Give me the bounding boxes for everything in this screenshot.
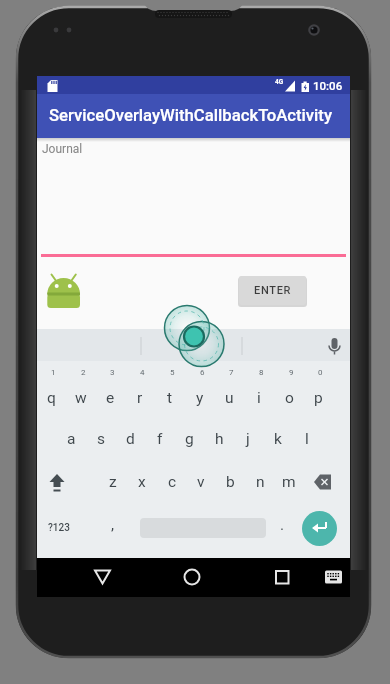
staticText: y (196, 389, 204, 407)
staticText: ENTER (254, 284, 292, 297)
staticText: o (285, 389, 294, 407)
button[interactable]: k (264, 426, 292, 452)
staticText: 9 (289, 368, 294, 377)
button[interactable]: r (126, 385, 154, 411)
staticText: b (226, 473, 235, 491)
button[interactable] (302, 511, 337, 546)
button[interactable]: i (245, 385, 273, 411)
staticText: 2 (81, 368, 86, 377)
button[interactable]: ?123 (41, 515, 77, 541)
button[interactable]: q (37, 385, 65, 411)
staticText: 4G (275, 78, 284, 86)
staticText: . (280, 516, 285, 534)
staticText: i (257, 389, 261, 407)
button[interactable]: j (234, 426, 262, 452)
button[interactable]: a (57, 426, 85, 452)
staticText: j (246, 430, 250, 448)
staticText: ServiceOverlayWithCallbackToActivity (49, 106, 333, 126)
staticText: u (225, 389, 234, 407)
staticText: 8 (259, 368, 264, 377)
staticText: c (168, 473, 177, 491)
staticText: 1 (51, 368, 56, 377)
staticText: h (215, 430, 224, 448)
staticText: m (282, 473, 296, 491)
staticText: 10:06 (313, 79, 343, 92)
button[interactable]: ENTER (239, 276, 306, 305)
staticText: z (109, 473, 117, 491)
staticText: n (256, 473, 265, 491)
staticText: f (157, 430, 163, 448)
staticText: ?123 (48, 522, 70, 534)
staticText: 7 (229, 368, 234, 377)
staticText: e (106, 389, 115, 407)
button[interactable]: x (128, 469, 156, 495)
button[interactable]: . (272, 512, 292, 538)
staticText: t (167, 389, 173, 407)
button[interactable]: o (275, 385, 303, 411)
button[interactable]: t (156, 385, 184, 411)
button[interactable]: h (205, 426, 233, 452)
staticText: 6 (200, 368, 205, 377)
button[interactable]: u (215, 385, 243, 411)
staticText: s (97, 430, 105, 448)
button[interactable]: z (99, 469, 127, 495)
button[interactable]: g (175, 426, 203, 452)
staticText: 5 (170, 368, 175, 377)
button[interactable]: d (116, 426, 144, 452)
button[interactable]: f (146, 426, 174, 452)
button[interactable]: m (275, 469, 303, 495)
button[interactable]: , (103, 512, 123, 538)
button[interactable]: b (216, 469, 244, 495)
staticText: g (185, 430, 194, 448)
staticText: p (314, 389, 323, 407)
staticText: a (67, 430, 76, 448)
button[interactable]: w (67, 385, 95, 411)
staticText: q (47, 389, 56, 407)
button[interactable]: p (304, 385, 332, 411)
button[interactable]: n (246, 469, 274, 495)
button[interactable]: v (187, 469, 215, 495)
staticText: 0 (318, 368, 323, 377)
staticText: 4 (140, 368, 145, 377)
staticText: v (197, 473, 205, 491)
staticText: r (137, 389, 143, 407)
button[interactable]: s (87, 426, 115, 452)
staticText: , (111, 516, 115, 534)
staticText: 3 (110, 368, 115, 377)
button[interactable]: y (186, 385, 214, 411)
staticText: x (138, 473, 146, 491)
staticText: w (75, 389, 87, 407)
staticText: d (126, 430, 135, 448)
staticText: k (274, 430, 282, 448)
button[interactable]: l (293, 426, 321, 452)
staticText: Journal (42, 142, 83, 156)
button[interactable]: e (96, 385, 124, 411)
button[interactable]: c (158, 469, 186, 495)
staticText: l (305, 430, 309, 448)
